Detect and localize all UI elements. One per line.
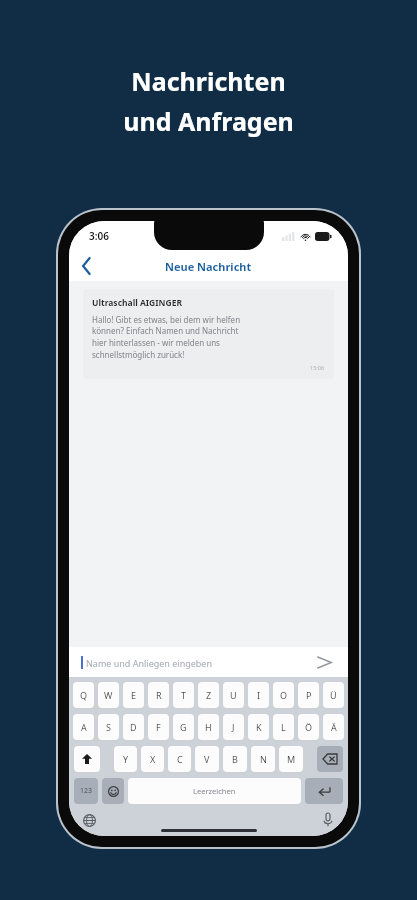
staticText: I bbox=[257, 689, 261, 701]
button[interactable]: Backspace bbox=[317, 746, 343, 772]
button[interactable]: Emoji bbox=[102, 778, 124, 804]
staticText: 123 bbox=[80, 786, 93, 796]
staticText: Ultraschall AIGINGER bbox=[92, 297, 182, 309]
button[interactable]: Name und Anliegen eingeben bbox=[81, 656, 312, 669]
button[interactable]: H bbox=[198, 714, 219, 740]
button[interactable]: M bbox=[279, 746, 303, 772]
staticText: R bbox=[156, 689, 162, 701]
button[interactable]: Leerzeichen bbox=[128, 778, 301, 804]
staticText: V bbox=[204, 753, 210, 765]
staticText: Leerzeichen bbox=[193, 786, 236, 796]
button[interactable]: Shift bbox=[74, 746, 100, 772]
staticText: F bbox=[156, 721, 161, 733]
button[interactable]: K bbox=[248, 714, 269, 740]
staticText: Y bbox=[123, 753, 129, 765]
staticText: B bbox=[232, 753, 238, 765]
staticText: Neue Nachricht bbox=[165, 259, 252, 274]
staticText: Hallo! Gibt es etwas, bei dem wir helfen… bbox=[92, 314, 241, 361]
staticText: P bbox=[306, 689, 312, 701]
button[interactable]: 123 bbox=[74, 778, 98, 804]
button[interactable]: J bbox=[223, 714, 244, 740]
button[interactable]: B bbox=[223, 746, 247, 772]
button[interactable]: Q bbox=[73, 682, 94, 708]
staticText: A bbox=[81, 721, 87, 733]
staticText: S bbox=[106, 721, 111, 733]
button[interactable]: L bbox=[273, 714, 294, 740]
button[interactable]: P bbox=[298, 682, 319, 708]
button[interactable]: G bbox=[173, 714, 194, 740]
staticText: C bbox=[177, 753, 183, 765]
staticText: O bbox=[280, 689, 288, 701]
staticText: D bbox=[130, 721, 137, 733]
staticText: Ö bbox=[305, 721, 313, 733]
button[interactable]: O bbox=[273, 682, 294, 708]
button[interactable]: Send bbox=[312, 650, 336, 674]
staticText: 15:06 bbox=[310, 364, 325, 371]
staticText: E bbox=[131, 689, 137, 701]
staticText: G bbox=[180, 721, 187, 733]
button[interactable]: T bbox=[173, 682, 194, 708]
button[interactable]: R bbox=[148, 682, 169, 708]
button[interactable]: Change keyboard language bbox=[77, 808, 101, 832]
staticText: L bbox=[281, 721, 286, 733]
staticText: Z bbox=[206, 689, 212, 701]
staticText: M bbox=[287, 753, 296, 765]
staticText: und Anfragen bbox=[123, 104, 294, 138]
button[interactable]: X bbox=[141, 746, 164, 772]
staticText: X bbox=[150, 753, 156, 765]
button[interactable]: Back bbox=[69, 251, 103, 281]
button[interactable]: I bbox=[248, 682, 269, 708]
button[interactable]: Return bbox=[305, 778, 343, 804]
button[interactable]: U bbox=[223, 682, 244, 708]
button[interactable]: D bbox=[123, 714, 144, 740]
staticText: 3:06 bbox=[89, 229, 109, 243]
staticText: Name und Anliegen eingeben bbox=[86, 657, 213, 669]
staticText: T bbox=[181, 689, 187, 701]
staticText: H bbox=[205, 721, 212, 733]
button[interactable]: F bbox=[148, 714, 169, 740]
button[interactable]: Z bbox=[198, 682, 219, 708]
staticText: W bbox=[104, 689, 113, 701]
staticText: N bbox=[260, 753, 267, 765]
button[interactable]: E bbox=[123, 682, 144, 708]
staticText: U bbox=[230, 689, 237, 701]
staticText: K bbox=[256, 721, 262, 733]
staticText: J bbox=[232, 721, 235, 733]
staticText: Ü bbox=[330, 689, 337, 701]
button[interactable]: A bbox=[73, 714, 94, 740]
button[interactable]: W bbox=[98, 682, 119, 708]
button[interactable]: Ü bbox=[323, 682, 344, 708]
staticText: Ä bbox=[331, 721, 337, 733]
button[interactable]: Ä bbox=[323, 714, 344, 740]
button[interactable]: Ö bbox=[298, 714, 319, 740]
button[interactable]: S bbox=[98, 714, 119, 740]
staticText: Q bbox=[80, 689, 88, 701]
button[interactable]: C bbox=[168, 746, 191, 772]
button[interactable]: Ultraschall AIGINGER bbox=[83, 289, 334, 379]
button[interactable]: V bbox=[195, 746, 219, 772]
button[interactable]: Dictate bbox=[316, 808, 340, 832]
staticText: Nachrichten bbox=[131, 64, 286, 98]
button[interactable]: Y bbox=[114, 746, 137, 772]
button[interactable]: N bbox=[251, 746, 275, 772]
